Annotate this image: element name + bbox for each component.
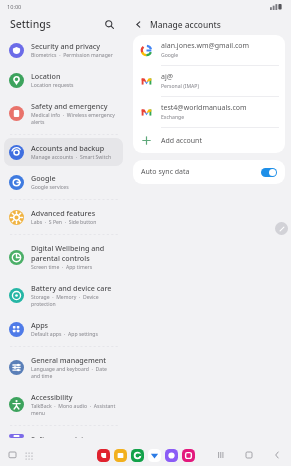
staticText: Screen time · App timers	[31, 264, 93, 271]
button[interactable]: alan.jones.wm@gmail.com	[133, 35, 285, 66]
button[interactable]: Advanced features	[4, 203, 123, 231]
staticText: Software update	[31, 434, 88, 438]
staticText: Add account	[161, 136, 202, 146]
staticText: Manage accounts	[150, 19, 221, 30]
button[interactable]: App	[165, 449, 178, 462]
staticText: aj@	[161, 72, 174, 82]
button[interactable]: App	[131, 449, 144, 462]
staticText: alan.jones.wm@gmail.com	[161, 41, 250, 51]
staticText: Auto sync data	[141, 167, 190, 177]
button[interactable]: Accounts and backup	[4, 138, 123, 166]
button[interactable]: Battery and device care	[4, 278, 123, 313]
staticText: Biometrics · Permission manager	[31, 52, 113, 59]
button[interactable]: Add account	[133, 128, 285, 153]
staticText: Default apps · App settings	[31, 331, 98, 338]
button[interactable]: Search	[101, 16, 117, 32]
button[interactable]: Security and privacy	[4, 36, 123, 64]
button[interactable]: App	[182, 449, 195, 462]
button[interactable]: All apps	[22, 449, 34, 461]
staticText: Google	[31, 173, 56, 183]
button[interactable]: Digital Wellbeing and parental controls	[4, 238, 123, 276]
staticText: test4@worldmanuals.com	[161, 103, 247, 113]
button[interactable]: General management	[4, 350, 123, 385]
staticText: General management	[31, 355, 107, 365]
staticText: Medical info · Wireless emergency alerts	[31, 112, 117, 126]
button[interactable]: Recents	[215, 449, 227, 461]
button[interactable]: App	[114, 449, 127, 462]
button[interactable]: Accessibility	[4, 387, 123, 422]
button[interactable]: App	[97, 449, 110, 462]
button[interactable]: Google	[4, 168, 123, 196]
button[interactable]: Apps	[4, 315, 123, 343]
staticText: Google	[161, 52, 179, 59]
button[interactable]: Back	[271, 449, 283, 461]
staticText: Storage · Memory · Device protection	[31, 294, 117, 308]
staticText: Location	[31, 71, 61, 81]
staticText: Digital Wellbeing and parental controls	[31, 243, 117, 263]
staticText: Google services	[31, 184, 69, 191]
button[interactable]: aj@	[133, 66, 285, 97]
staticText: Exchange	[161, 114, 185, 121]
staticText: Accounts and backup	[31, 143, 105, 153]
button[interactable]: App	[148, 449, 161, 462]
button[interactable]: Location	[4, 66, 123, 94]
staticText: Apps	[31, 320, 49, 330]
button[interactable]: Back	[131, 17, 146, 32]
staticText: Battery and device care	[31, 283, 112, 293]
button[interactable]: Edit	[275, 222, 288, 235]
staticText: Accessibility	[31, 392, 73, 402]
button[interactable]: Safety and emergency	[4, 96, 123, 131]
staticText: TalkBack · Mono audio · Assistant menu	[31, 403, 117, 417]
staticText: Security and privacy	[31, 41, 101, 51]
button[interactable]: test4@worldmanuals.com	[133, 97, 285, 128]
button[interactable]: Home	[243, 449, 255, 461]
button[interactable]: Auto sync data	[133, 160, 285, 184]
staticText: 10:00	[7, 3, 22, 11]
staticText: Manage accounts · Smart Switch	[31, 154, 112, 161]
staticText: Language and keyboard · Date and time	[31, 366, 117, 380]
button[interactable]: Software update	[4, 429, 123, 443]
staticText: Labs · S Pen · Side button	[31, 219, 97, 226]
staticText: Location requests	[31, 82, 74, 89]
staticText: Personal (IMAP)	[161, 83, 199, 90]
button[interactable]: Screenshot	[6, 449, 18, 461]
staticText: Safety and emergency	[31, 101, 108, 111]
staticText: Settings	[10, 17, 51, 31]
staticText: Advanced features	[31, 208, 96, 218]
